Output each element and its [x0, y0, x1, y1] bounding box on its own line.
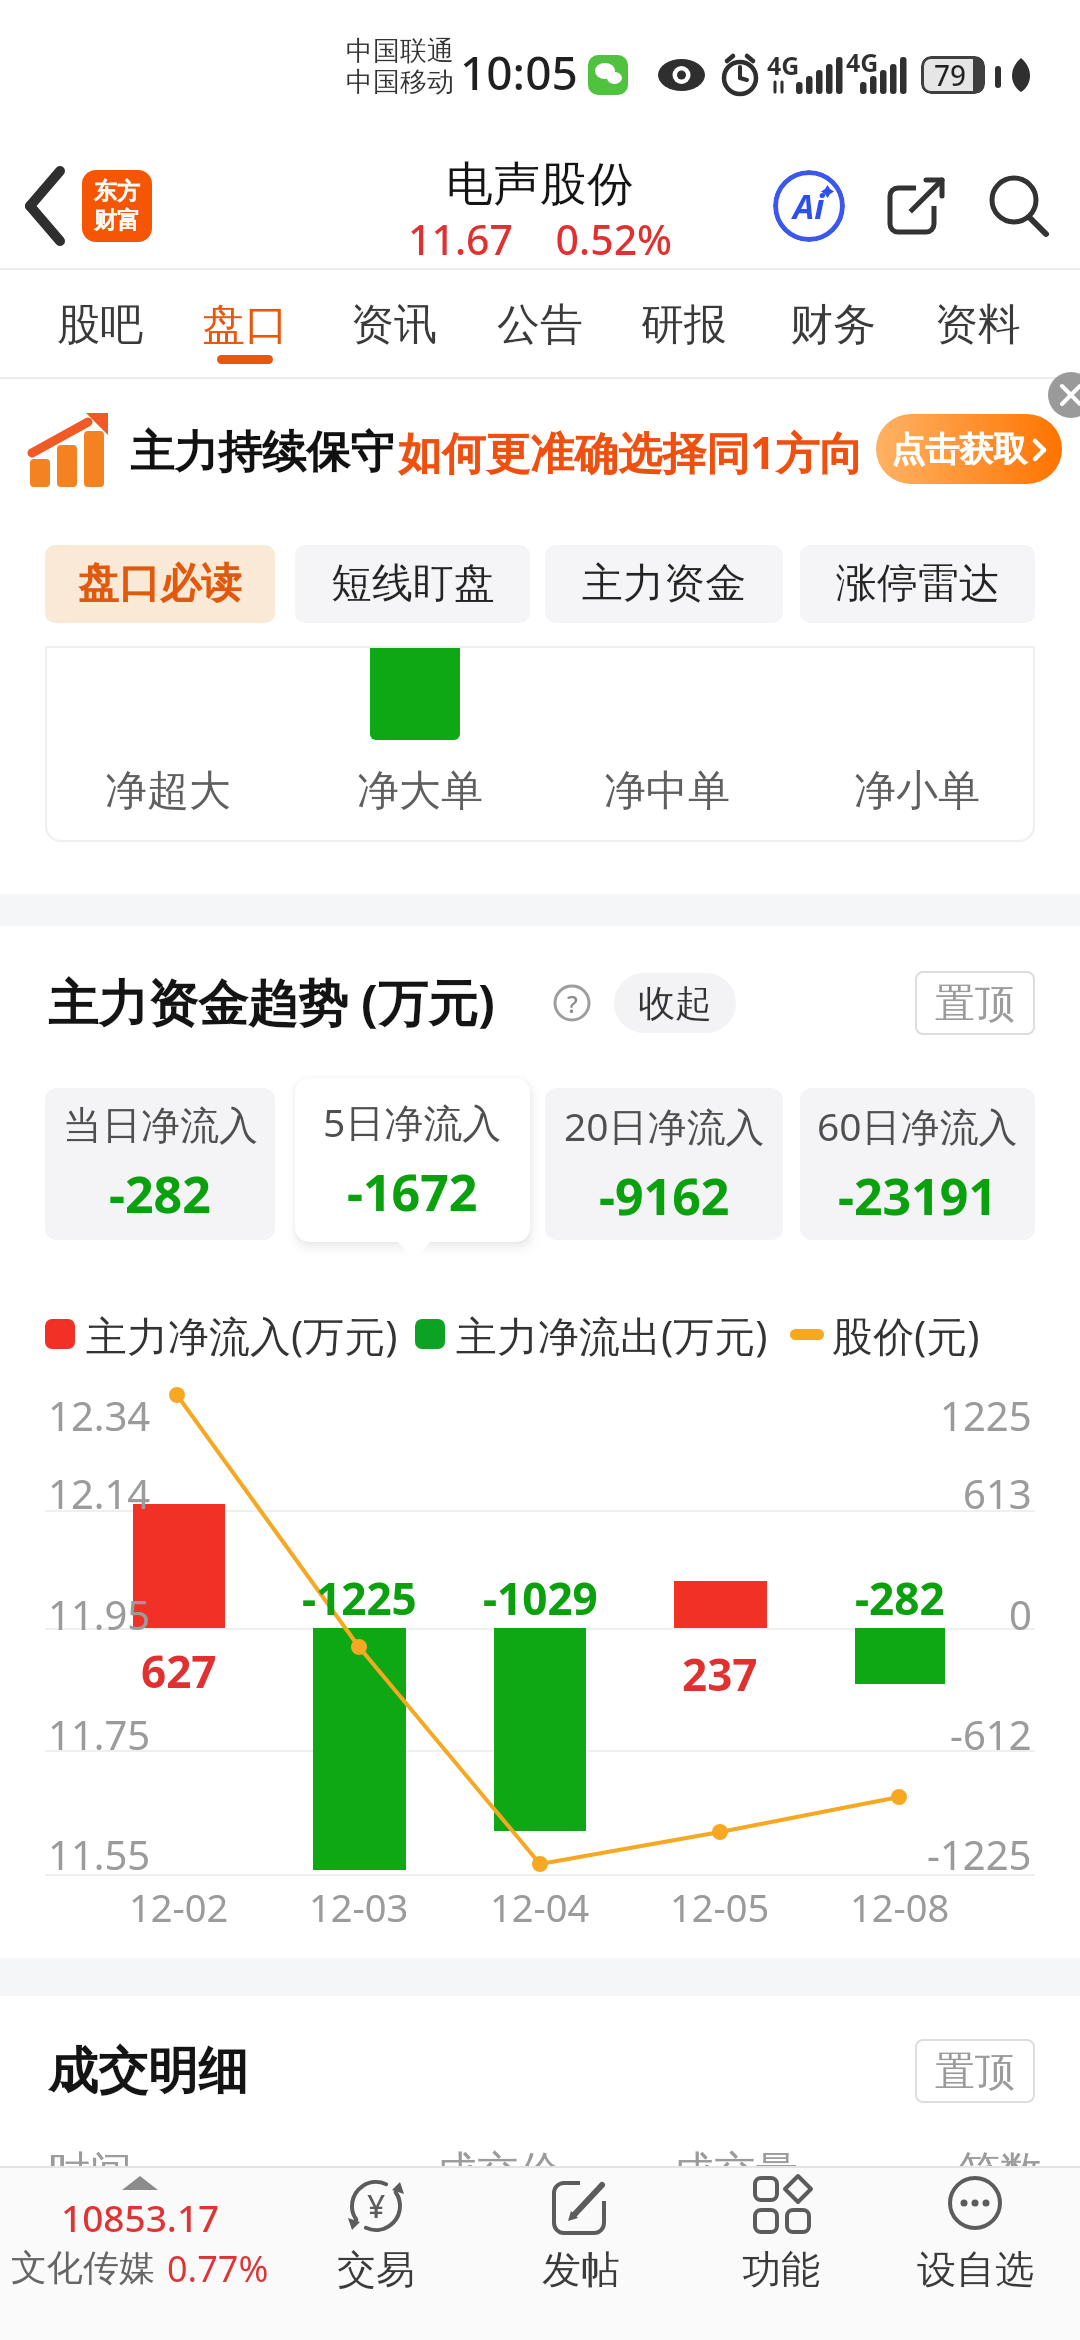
button[interactable]: 公告: [468, 288, 612, 362]
button[interactable]: 盘口必读: [45, 545, 275, 623]
button[interactable]: 20日净流入: [545, 1088, 783, 1240]
button[interactable]: 置顶: [915, 2039, 1035, 2103]
staticText: 613: [963, 1466, 1032, 1520]
button[interactable]: [1048, 372, 1080, 418]
staticText: 资讯: [351, 298, 437, 352]
staticText: 股价(元): [832, 1307, 980, 1363]
staticText: 5日净流入: [323, 1095, 502, 1148]
staticText: 12-04: [490, 1881, 590, 1933]
staticText: 4G: [767, 48, 800, 82]
button[interactable]: [986, 172, 1052, 238]
staticText: 12-03: [309, 1881, 409, 1933]
staticText: 净大单: [357, 765, 483, 818]
button[interactable]: Ai: [773, 170, 845, 242]
staticText: 中国联通: [346, 34, 454, 68]
staticText: 短线盯盘: [331, 558, 495, 610]
button[interactable]: 研报: [612, 288, 756, 362]
staticText: 12.34: [48, 1388, 151, 1442]
button[interactable]: 短线盯盘: [295, 545, 530, 623]
staticText: -282: [855, 1568, 945, 1628]
button[interactable]: 点击获取: [876, 414, 1062, 484]
staticText: 资料: [935, 298, 1021, 352]
staticText: 公告: [497, 298, 583, 352]
staticText: -612: [950, 1707, 1032, 1761]
button[interactable]: 资讯: [322, 288, 466, 362]
staticText: -1225: [302, 1568, 417, 1628]
staticText: 11.55: [48, 1827, 151, 1881]
button[interactable]: 置顶: [915, 971, 1035, 1035]
staticText: 主力净流入(万元): [86, 1307, 398, 1363]
staticText: -9162: [599, 1162, 730, 1230]
staticText: 11.95: [48, 1587, 151, 1641]
staticText: 股吧: [57, 298, 143, 352]
staticText: 11.67 0.52%: [408, 211, 673, 267]
button[interactable]: 股吧: [28, 288, 172, 362]
button[interactable]: 当日净流入: [45, 1088, 275, 1240]
staticText: 主力净流出(万元): [456, 1307, 768, 1363]
button[interactable]: 60日净流入: [800, 1088, 1035, 1240]
staticText: 财富: [94, 206, 140, 235]
button[interactable]: 资料: [906, 288, 1050, 362]
staticText: Ai: [793, 183, 825, 229]
staticText: 12.14: [48, 1466, 151, 1520]
staticText: 60日净流入: [817, 1099, 1018, 1152]
staticText: 237: [682, 1644, 758, 1704]
staticText: 主力资金趋势 (万元): [48, 968, 495, 1036]
staticText: 研报: [641, 298, 727, 352]
staticText: 笔数: [958, 2146, 1042, 2199]
staticText: 627: [141, 1641, 217, 1701]
button[interactable]: [884, 172, 950, 238]
button[interactable]: [14, 166, 78, 246]
staticText: 净中单: [604, 765, 730, 818]
staticText: 置顶: [935, 2046, 1015, 2096]
button[interactable]: 10853.17: [8, 2170, 272, 2330]
button[interactable]: 发帖: [515, 2170, 647, 2330]
staticText: 0.77%: [167, 2244, 269, 2290]
staticText: 12-05: [670, 1881, 770, 1933]
button[interactable]: 功能: [715, 2170, 847, 2330]
button[interactable]: 收起: [614, 973, 736, 1033]
button[interactable]: 涨停雷达: [800, 545, 1035, 623]
staticText: 涨停雷达: [836, 558, 1000, 610]
staticText: 成交量: [672, 2146, 798, 2199]
staticText: 中国移动: [346, 65, 454, 99]
staticText: 点击获取: [891, 428, 1027, 471]
button[interactable]: 财务: [761, 288, 905, 362]
staticText: 净小单: [854, 765, 980, 818]
staticText: 10:05: [460, 41, 578, 104]
staticText: 电声股份: [446, 155, 634, 214]
staticText: 0: [1009, 1587, 1032, 1641]
staticText: 收起: [638, 980, 712, 1027]
staticText: 12-02: [129, 1881, 229, 1933]
staticText: 1225: [940, 1388, 1032, 1442]
staticText: ?: [567, 987, 578, 1020]
staticText: 盘口: [202, 298, 288, 352]
staticText: 成交明细: [48, 2040, 248, 2103]
staticText: 20日净流入: [564, 1099, 765, 1152]
staticText: 交易: [337, 2245, 415, 2294]
staticText: 文化传媒: [11, 2245, 155, 2290]
staticText: 净超大: [105, 765, 231, 818]
staticText: 东方: [94, 177, 140, 206]
button[interactable]: 主力资金: [545, 545, 783, 623]
staticText: -1225: [927, 1827, 1032, 1881]
staticText: 成交价: [435, 2146, 561, 2199]
staticText: 10853.17: [61, 2192, 220, 2238]
staticText: -1029: [483, 1568, 598, 1628]
button[interactable]: 东方: [82, 170, 152, 242]
staticText: 12-08: [850, 1881, 950, 1933]
button[interactable]: ¥: [310, 2170, 442, 2330]
staticText: -23191: [838, 1162, 997, 1230]
button[interactable]: [0, 379, 1080, 522]
button[interactable]: ?: [553, 984, 591, 1022]
staticText: 时间: [48, 2146, 132, 2199]
staticText: 设自选: [917, 2245, 1034, 2294]
button[interactable]: 5日净流入: [295, 1078, 530, 1242]
button[interactable]: 盘口: [173, 288, 317, 362]
staticText: 11.75: [48, 1707, 151, 1761]
staticText: 4G: [846, 45, 879, 79]
button[interactable]: 设自选: [900, 2170, 1050, 2330]
staticText: 置顶: [935, 978, 1015, 1028]
staticText: 当日净流入: [63, 1101, 258, 1150]
staticText: 如何更准确选择同1方向: [398, 422, 864, 482]
